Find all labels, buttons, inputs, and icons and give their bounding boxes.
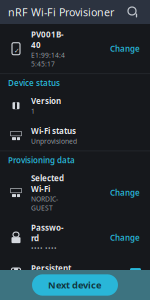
button[interactable]: Change (106, 229, 142, 246)
button[interactable]: Selected Wi-Fi (0, 168, 150, 217)
staticText: Selected Wi-Fi (31, 173, 64, 194)
button[interactable]: ✓ (0, 24, 150, 73)
staticText: •••• •••• (31, 244, 57, 253)
staticText: 1 (31, 107, 35, 116)
staticText: Change (110, 187, 140, 198)
staticText: Version (31, 96, 61, 106)
button[interactable]: Next device (32, 274, 118, 296)
staticText: Wi-Fi status (31, 126, 76, 136)
button[interactable]: Password (0, 217, 150, 258)
button[interactable]: Change (106, 40, 142, 57)
staticText: ✓ (131, 267, 140, 280)
staticText: Provisioning data (8, 155, 75, 165)
staticText: Change (110, 43, 140, 54)
staticText: nRF Wi-Fi Provisioner (8, 5, 114, 19)
staticText: Change (110, 232, 140, 243)
staticText: Next device (48, 279, 102, 291)
staticText: Device status (8, 78, 60, 88)
staticText: Persistent storage (31, 263, 71, 284)
staticText: Upload status (8, 293, 62, 300)
staticText: Password (31, 222, 64, 243)
button[interactable]: Persistent storage (0, 258, 150, 289)
staticText: NORDIC-GUEST (31, 195, 58, 212)
staticText: Unprovisioned (31, 137, 77, 146)
button[interactable]: Change (106, 184, 142, 201)
staticText: E1:99:14:45:45:17 (31, 51, 65, 68)
staticText: ✓ (14, 47, 20, 54)
button[interactable]: Search (124, 3, 142, 21)
staticText: PV001B40 (31, 29, 64, 50)
